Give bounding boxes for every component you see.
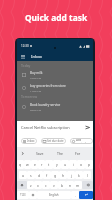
staticText: Save	[36, 151, 44, 156]
button[interactable]: h	[59, 171, 67, 179]
button[interactable]: x	[34, 181, 42, 189]
button[interactable]: r	[38, 160, 45, 169]
staticText: j	[71, 173, 72, 178]
button[interactable]: p	[85, 160, 93, 169]
button[interactable]: v	[50, 181, 58, 189]
button[interactable]: Buy milk	[17, 69, 93, 81]
staticText: w	[26, 162, 29, 167]
staticText: The	[57, 151, 63, 156]
button[interactable]: g	[51, 171, 59, 179]
staticText: e	[34, 162, 36, 167]
button[interactable]: Cancel Netflix subscription	[17, 121, 93, 134]
staticText: g	[54, 173, 57, 178]
button[interactable]: n	[66, 181, 74, 189]
staticText: i	[73, 162, 74, 167]
staticText: u	[64, 162, 67, 167]
staticText: x	[37, 183, 39, 188]
staticText: a	[22, 173, 24, 178]
staticText: buy groceries from store	[30, 84, 66, 88]
button[interactable]: More	[20, 151, 24, 155]
button[interactable]: j	[67, 171, 75, 179]
button[interactable]: Set due date	[41, 138, 66, 144]
button[interactable]: k	[75, 171, 83, 179]
staticText: o	[80, 162, 83, 167]
button[interactable]: u	[61, 160, 69, 169]
staticText: Add reminder	[76, 138, 91, 144]
staticText: c	[45, 183, 47, 188]
other: Send	[85, 125, 90, 130]
button[interactable]: a	[19, 171, 27, 179]
button[interactable]: .	[71, 191, 79, 199]
staticText: n	[69, 183, 72, 188]
staticText: 11:00 AM	[30, 89, 41, 92]
staticText: Cancel Netflix subscription	[21, 125, 70, 130]
button[interactable]: Book laundry service	[17, 101, 93, 113]
button[interactable]: Backspace	[82, 181, 93, 189]
button[interactable]: d	[35, 171, 43, 179]
staticText: z	[30, 183, 32, 188]
button[interactable]: Shift	[17, 181, 27, 189]
staticText: ?123	[20, 193, 26, 197]
button[interactable]: c	[42, 181, 50, 189]
button[interactable]: t	[45, 160, 53, 169]
staticText: 09:00 AM	[30, 108, 41, 111]
staticText: f	[46, 173, 48, 178]
staticText: y	[56, 162, 58, 167]
button[interactable]: f	[43, 171, 51, 179]
staticText: k	[78, 173, 80, 178]
staticText: ↵	[85, 193, 88, 197]
button[interactable]: Enter	[79, 191, 93, 199]
button[interactable]: Inbox	[21, 138, 37, 144]
staticText: r	[41, 162, 43, 167]
staticText: Quick add task	[0, 12, 112, 23]
staticText: s	[30, 173, 32, 178]
staticText: b	[61, 183, 64, 188]
button[interactable]: ?123	[17, 191, 29, 199]
staticText: Today	[21, 63, 31, 67]
button[interactable]: e	[31, 160, 38, 169]
button[interactable]: z	[27, 181, 34, 189]
staticText: .	[75, 193, 76, 198]
staticText: 10:00 AM	[30, 76, 41, 79]
button[interactable]: m	[74, 181, 82, 189]
button[interactable]: l	[83, 171, 91, 179]
staticText: For	[75, 151, 81, 156]
staticText: Set due date	[47, 139, 64, 143]
button[interactable]: y	[53, 160, 61, 169]
staticText: l	[87, 173, 88, 178]
staticText: t	[48, 162, 50, 167]
button[interactable]: s	[27, 171, 35, 179]
button[interactable]: w	[24, 160, 31, 169]
staticText: h	[62, 173, 65, 178]
button[interactable]: Add reminder	[70, 138, 93, 144]
button[interactable]: English	[37, 191, 71, 199]
staticText: English	[49, 193, 59, 197]
staticText: v	[53, 183, 55, 188]
staticText: p	[88, 162, 91, 167]
staticText: m	[76, 183, 80, 188]
button[interactable]: o	[77, 160, 85, 169]
button[interactable]: Emoji	[29, 191, 37, 199]
staticText: Tomorrow	[21, 94, 38, 98]
staticText: Inbox	[27, 139, 35, 143]
button[interactable]: q	[17, 160, 24, 169]
staticText: Inbox	[31, 54, 42, 59]
button[interactable]: b	[58, 181, 66, 189]
staticText: d	[38, 173, 41, 178]
staticText: Book laundry service	[30, 103, 61, 107]
button[interactable]: Menu	[19, 53, 26, 60]
staticText: q	[19, 162, 22, 167]
button[interactable]: buy groceries from store	[17, 82, 93, 94]
staticText: Buy milk	[30, 71, 43, 75]
button[interactable]: i	[69, 160, 77, 169]
staticText: 12:30	[21, 44, 29, 48]
